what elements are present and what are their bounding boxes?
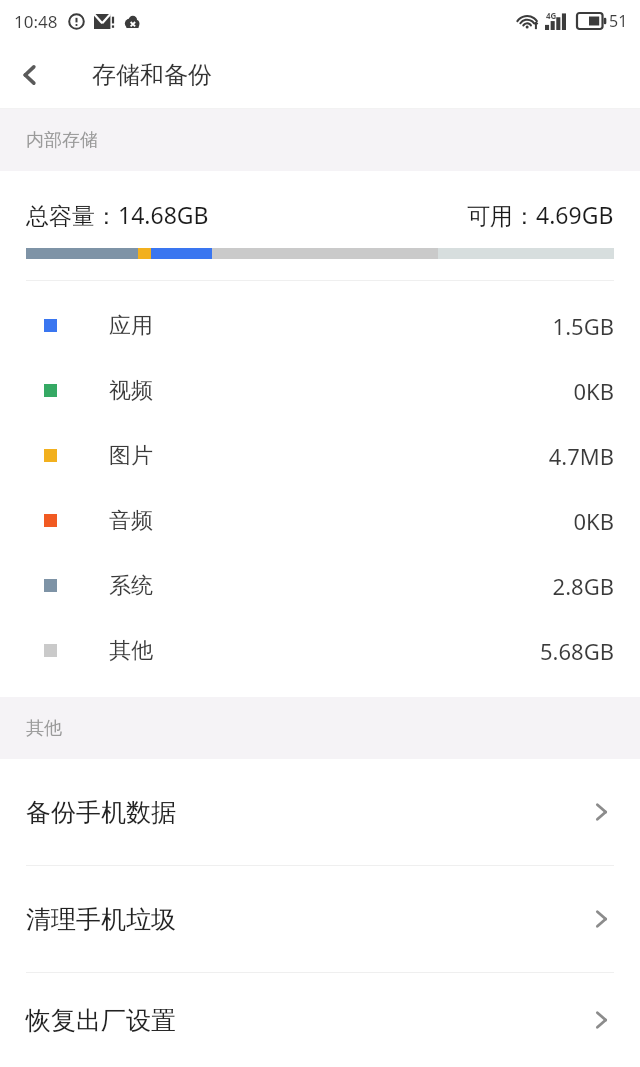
staticText: 存储和备份 — [92, 60, 212, 90]
button[interactable]: Back — [0, 45, 60, 105]
staticText: 可用：4.69GB — [467, 199, 614, 230]
staticText: 总容量：14.68GB — [26, 199, 209, 230]
button[interactable]: 恢复出厂设置 — [0, 973, 640, 1067]
staticText: 其他 — [26, 717, 62, 740]
staticText: 4G — [546, 10, 557, 21]
button[interactable]: 其他 — [0, 618, 640, 683]
button[interactable]: 系统 — [0, 553, 640, 618]
button[interactable]: 应用 — [0, 293, 640, 358]
button[interactable]: 清理手机垃圾 — [0, 866, 640, 972]
staticText: 其他 — [109, 637, 153, 665]
button[interactable]: 图片 — [0, 423, 640, 488]
staticText: 应用 — [109, 312, 153, 340]
staticText: 图片 — [109, 442, 153, 470]
staticText: 51 — [609, 10, 628, 32]
staticText: 系统 — [109, 572, 153, 600]
staticText: 备份手机数据 — [26, 797, 176, 828]
staticText: 10:48 — [14, 10, 58, 33]
button[interactable]: 音频 — [0, 488, 640, 553]
staticText: 0KB — [573, 506, 614, 536]
staticText: 视频 — [109, 377, 153, 405]
staticText: 0KB — [573, 376, 614, 406]
staticText: 清理手机垃圾 — [26, 904, 176, 935]
staticText: 恢复出厂设置 — [26, 1005, 176, 1036]
staticText: 1.5GB — [552, 311, 614, 341]
staticText: 2.8GB — [552, 571, 614, 601]
staticText: 音频 — [109, 507, 153, 535]
staticText: 5.68GB — [540, 636, 614, 666]
button[interactable]: 备份手机数据 — [0, 759, 640, 865]
staticText: 内部存储 — [26, 129, 98, 152]
staticText: 4.7MB — [548, 441, 614, 471]
button[interactable]: 视频 — [0, 358, 640, 423]
